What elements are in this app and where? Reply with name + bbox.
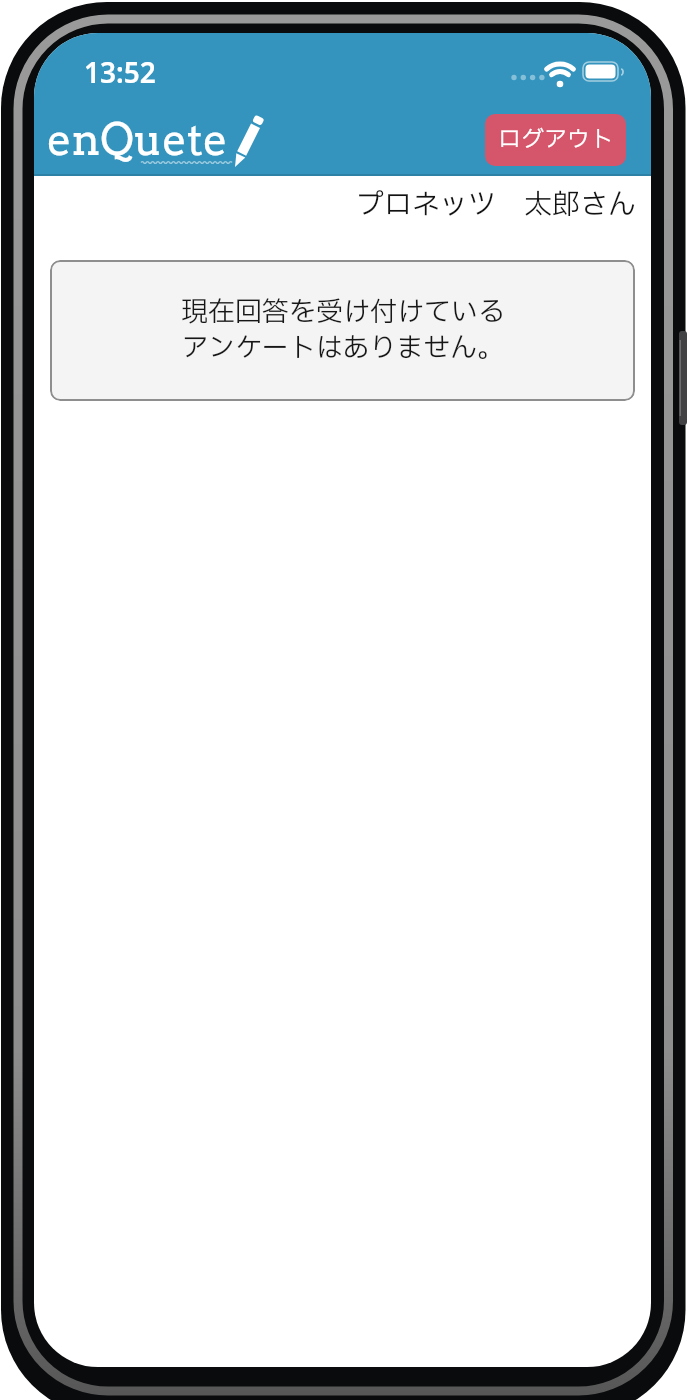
- staticText: プロネッツ 太郎さん: [356, 184, 637, 226]
- button[interactable]: ログアウト: [485, 114, 626, 166]
- staticText: enQuete: [47, 114, 228, 166]
- staticText: 現在回答を受け付けている アンケートはありません。: [181, 292, 505, 369]
- staticText: ログアウト: [498, 123, 613, 157]
- staticText: 13:52: [84, 53, 156, 91]
